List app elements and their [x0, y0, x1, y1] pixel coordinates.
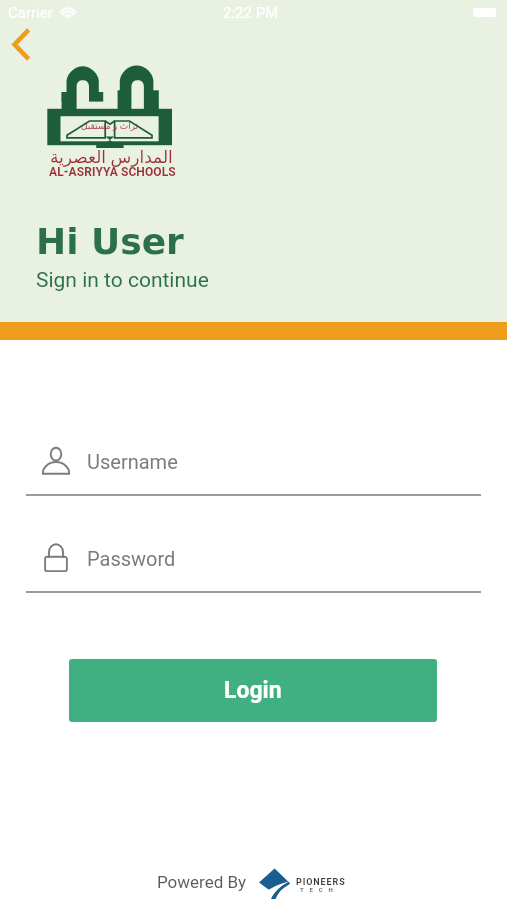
staticText: T E C H	[300, 886, 335, 893]
staticText: Carrier	[8, 4, 53, 22]
button[interactable]: Login	[69, 659, 437, 722]
staticText: PIONEERS	[296, 877, 346, 888]
staticText: AL-ASRIYYA SCHOOLS	[49, 165, 176, 179]
button[interactable]: Password	[26, 531, 481, 593]
staticText: Sign in to continue	[36, 268, 209, 293]
staticText: Powered By	[157, 872, 247, 892]
staticText: تراث و مستقبل	[81, 119, 139, 131]
staticText: 2:22 PM	[223, 4, 279, 22]
staticText: المدارس العصرية	[50, 145, 173, 168]
button[interactable]: Back	[0, 22, 42, 64]
button[interactable]: Username	[26, 434, 481, 496]
staticText: Username	[87, 450, 178, 473]
staticText: Hi User	[36, 221, 184, 263]
staticText: Password	[87, 547, 176, 570]
staticText: Login	[224, 677, 282, 704]
